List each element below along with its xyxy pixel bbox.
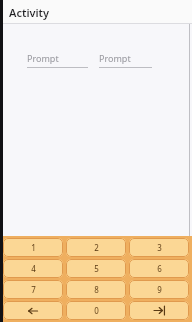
staticText: 4	[31, 263, 36, 274]
button[interactable]: 2	[66, 238, 126, 257]
staticText: 9	[157, 284, 162, 295]
button[interactable]: 5	[66, 259, 126, 278]
button[interactable]: 9	[129, 280, 189, 299]
staticText: 8	[94, 284, 99, 295]
staticText: 0	[94, 305, 99, 316]
button[interactable]: 7	[3, 280, 63, 299]
staticText: 7	[31, 284, 36, 295]
button[interactable]: Prompt	[27, 52, 88, 68]
staticText: 3	[157, 242, 162, 253]
staticText: 5	[94, 263, 99, 274]
staticText: 1	[31, 242, 36, 253]
button[interactable]: 1	[3, 238, 63, 257]
staticText: Activity	[9, 5, 50, 20]
staticText: 6	[157, 263, 162, 274]
button[interactable]: 6	[129, 259, 189, 278]
button[interactable]: 0	[66, 301, 126, 320]
button[interactable]: Backspace	[3, 301, 63, 320]
staticText: Prompt	[99, 52, 131, 64]
button[interactable]: Next field	[129, 301, 189, 320]
button[interactable]: Prompt	[99, 52, 152, 68]
button[interactable]: 4	[3, 259, 63, 278]
button[interactable]: 3	[129, 238, 189, 257]
button[interactable]: 8	[66, 280, 126, 299]
staticText: 2	[94, 242, 99, 253]
staticText: Prompt	[27, 52, 59, 64]
